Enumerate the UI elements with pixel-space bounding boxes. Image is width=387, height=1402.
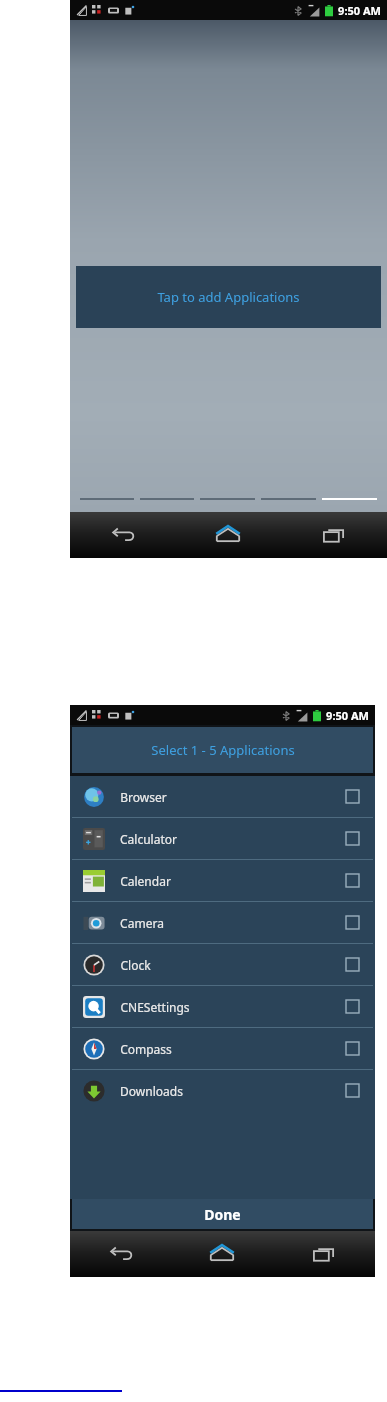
button[interactable]: Done xyxy=(72,1199,373,1229)
button[interactable]: CNESettings xyxy=(72,986,373,1027)
button[interactable]: Calculator xyxy=(72,818,373,859)
staticText: CNESettings xyxy=(120,999,190,1015)
button[interactable]: Select 1 - 5 Applications xyxy=(72,727,373,773)
staticText: Camera xyxy=(120,915,164,931)
button[interactable]: Downloads xyxy=(72,1070,373,1111)
button[interactable]: Recent apps xyxy=(273,1231,375,1277)
button[interactable]: Tap to add Applications xyxy=(76,266,381,328)
button[interactable]: Back xyxy=(70,512,175,558)
button[interactable]: Recent apps xyxy=(281,512,387,558)
staticText: Downloads xyxy=(120,1083,183,1099)
button[interactable]: Calendar xyxy=(72,860,373,901)
staticText: Calendar xyxy=(120,873,171,889)
staticText: 9:50 AM xyxy=(326,708,369,723)
button[interactable]: Compass xyxy=(72,1028,373,1069)
staticText: 9:50 AM xyxy=(338,3,381,18)
staticText: Select 1 - 5 Applications xyxy=(151,741,295,759)
button[interactable]: Home xyxy=(175,512,281,558)
button[interactable]: Home xyxy=(171,1231,273,1277)
staticText: Compass xyxy=(120,1041,172,1057)
staticText: Clock xyxy=(120,957,151,973)
button[interactable]: Back xyxy=(70,1231,171,1277)
button[interactable]: Clock xyxy=(72,944,373,985)
staticText: Calculator xyxy=(120,831,177,847)
staticText: Tap to add Applications xyxy=(157,288,300,306)
button[interactable]: Browser xyxy=(72,776,373,817)
staticText: Done xyxy=(204,1205,241,1224)
button[interactable]: Camera xyxy=(72,902,373,943)
staticText: Browser xyxy=(120,789,167,805)
